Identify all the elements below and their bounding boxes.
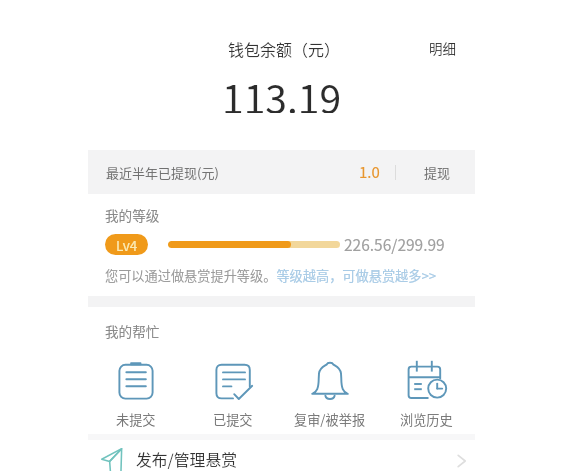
staticText: 复审/被举报 (294, 410, 366, 429)
button[interactable]: 未提交 (88, 360, 184, 429)
button[interactable]: 您可以通过做悬赏提升等级。等级越高，可做悬赏越多>> (105, 266, 437, 285)
staticText: 最近半年已提现(元) (106, 163, 219, 182)
button[interactable]: 明细 (429, 38, 456, 58)
staticText: 未提交 (116, 410, 156, 429)
staticText: 您可以通过做悬赏提升等级。等级越高，可做悬赏越多>> (105, 266, 437, 285)
button[interactable]: 发布/管理悬赏 (88, 447, 475, 471)
staticText: 我的等级 (105, 205, 160, 225)
button[interactable]: 最近半年已提现(元) (88, 150, 475, 194)
staticText: 钱包余额（元） (228, 37, 341, 60)
staticText: 提现 (424, 163, 451, 182)
staticText: 113.19 (222, 69, 342, 113)
staticText: 浏览历史 (400, 410, 453, 429)
button[interactable]: 浏览历史 (378, 360, 475, 429)
other: 发布/管理悬赏 (101, 447, 125, 471)
other: More (454, 454, 468, 468)
staticText: 226.56/299.99 (344, 233, 445, 255)
staticText: Lv4 (116, 235, 138, 255)
button[interactable]: 复审/被举报 (281, 360, 378, 429)
staticText: 明细 (429, 38, 456, 58)
staticText: 我的帮忙 (105, 321, 160, 341)
button[interactable]: 已提交 (184, 360, 281, 429)
staticText: 发布/管理悬赏 (136, 448, 237, 471)
staticText: 已提交 (213, 410, 253, 429)
staticText: 1.0 (359, 161, 380, 183)
button[interactable]: Lv4 (105, 234, 148, 255)
